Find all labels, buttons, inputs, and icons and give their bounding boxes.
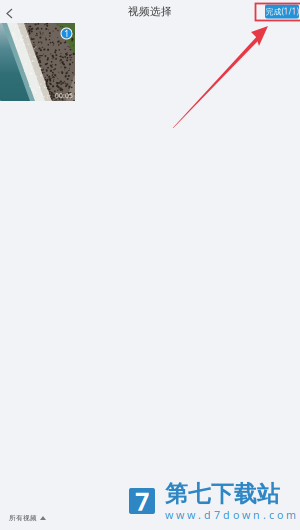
staticText: w w w . d 7 d o w n . c o m — [165, 508, 296, 522]
button[interactable]: 所有视频 — [0, 510, 46, 526]
staticText: 1 — [64, 27, 69, 40]
staticText: 第七下载站 — [165, 480, 280, 508]
button[interactable]: Back — [0, 0, 22, 23]
staticText: 所有视频 — [9, 514, 37, 522]
staticText: 视频选择 — [128, 5, 172, 18]
staticText: 00:05 — [55, 91, 73, 100]
button[interactable]: 完成(1/1) — [265, 4, 299, 18]
staticText: 7 — [135, 484, 149, 518]
button[interactable]: 1 — [0, 23, 75, 101]
staticText: 完成(1/1) — [265, 6, 298, 17]
